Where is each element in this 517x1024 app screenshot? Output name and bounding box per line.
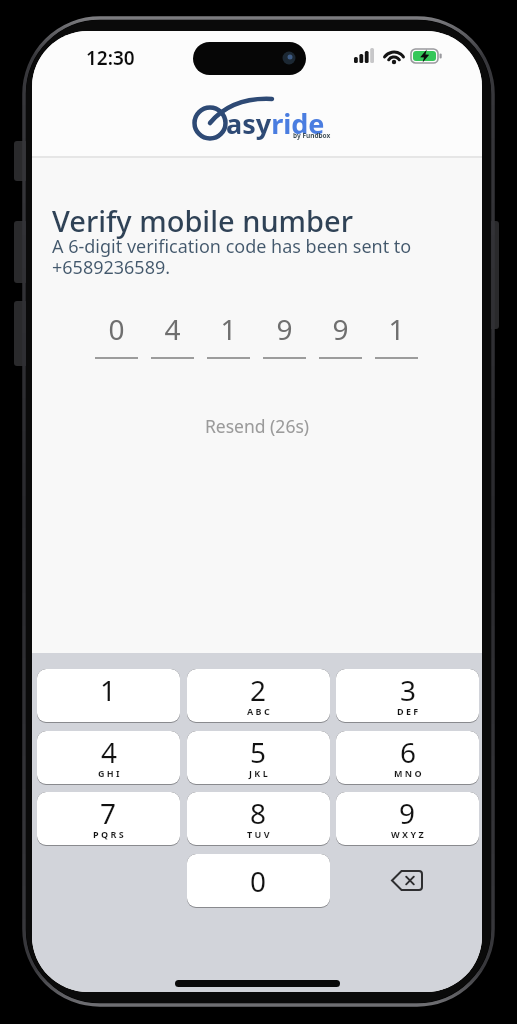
staticText: 9 <box>332 310 349 348</box>
button[interactable]: 8 <box>187 792 330 846</box>
staticText: W X Y Z <box>391 828 424 840</box>
staticText: 4 <box>164 310 181 348</box>
button[interactable] <box>336 854 479 907</box>
staticText: T U V <box>247 828 270 840</box>
button[interactable]: 9 <box>336 792 479 846</box>
button[interactable]: 1 <box>37 669 180 723</box>
staticText: J K L <box>249 767 268 779</box>
staticText: D E F <box>397 705 419 717</box>
staticText: M N O <box>394 767 422 779</box>
staticText: by Fundbox <box>293 131 331 140</box>
staticText: 2 <box>250 671 267 709</box>
staticText: 9 <box>399 794 416 832</box>
button[interactable]: 5 <box>187 731 330 785</box>
staticText: 12:30 <box>86 45 135 71</box>
button[interactable]: 7 <box>37 792 180 846</box>
staticText: 9 <box>276 310 293 348</box>
staticText: 6 <box>400 733 417 771</box>
staticText: 0 <box>250 862 267 900</box>
staticText: 3 <box>400 671 417 709</box>
staticText: 5 <box>250 733 267 771</box>
button[interactable]: 2 <box>187 669 330 723</box>
staticText: P Q R S <box>93 828 124 840</box>
staticText: 7 <box>100 794 117 832</box>
staticText: A 6-digit verification code has been sen… <box>52 234 412 279</box>
button[interactable]: 4 <box>37 731 180 785</box>
staticText: 8 <box>250 794 267 832</box>
staticText: 1 <box>220 310 237 348</box>
button[interactable]: 3 <box>336 669 479 723</box>
staticText: 0 <box>108 310 125 348</box>
staticText: 1 <box>100 671 117 709</box>
button[interactable]: 0 <box>187 854 330 908</box>
staticText: 4 <box>101 733 118 771</box>
staticText: asyride <box>226 105 325 142</box>
button[interactable]: Resend (26s) <box>32 414 482 438</box>
staticText: 1 <box>388 310 405 348</box>
button[interactable]: 6 <box>336 731 479 785</box>
staticText: Verify mobile number <box>52 201 353 240</box>
staticText: A B C <box>247 705 270 717</box>
staticText: G H I <box>98 767 120 779</box>
